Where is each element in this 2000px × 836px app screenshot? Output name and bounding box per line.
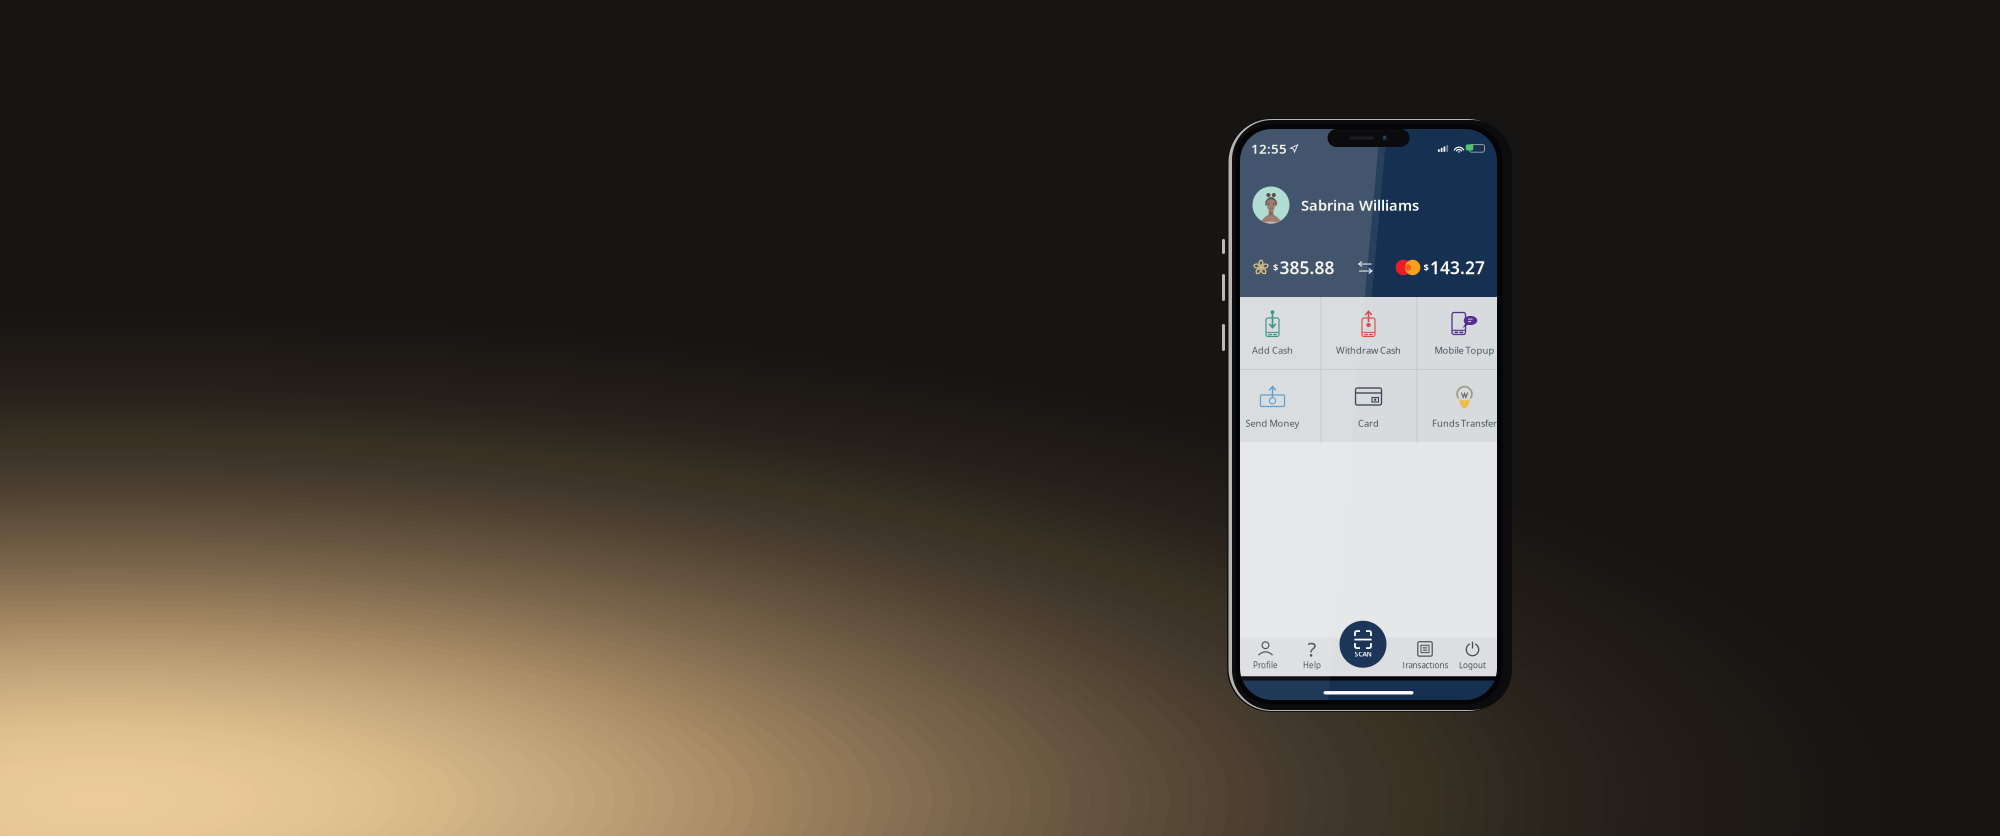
staticText: $ <box>1423 261 1428 274</box>
staticText: Help <box>1303 660 1321 670</box>
staticText: 143.27 <box>1430 256 1485 279</box>
button[interactable]: Funds Transfer <box>1416 370 1512 442</box>
button[interactable]: Withdraw Cash <box>1320 297 1416 369</box>
staticText: Send Money <box>1245 417 1299 429</box>
staticText: Withdraw Cash <box>1336 344 1401 356</box>
staticText: Sabrina Williams <box>1301 195 1419 215</box>
staticText: Add Cash <box>1252 344 1293 356</box>
staticText: 12:55 <box>1251 140 1287 157</box>
staticText: $ <box>1273 261 1278 274</box>
button[interactable]: ? <box>1287 638 1337 676</box>
staticText: SCAN <box>1354 650 1371 658</box>
staticText: Profile <box>1253 660 1278 670</box>
button[interactable]: Profile photo <box>1252 186 1290 224</box>
staticText: Funds Transfer <box>1432 417 1497 429</box>
staticText: Transactions <box>1401 660 1448 670</box>
button[interactable]: Send Money <box>1224 370 1320 442</box>
staticText: Card <box>1358 417 1379 429</box>
button[interactable]: Scan <box>1339 621 1386 668</box>
staticText: 385.88 <box>1279 256 1334 279</box>
button[interactable]: Transactions <box>1394 638 1456 676</box>
button[interactable]: Card <box>1320 370 1416 442</box>
button[interactable]: Profile <box>1240 638 1290 676</box>
staticText: ? <box>1307 636 1316 662</box>
button[interactable]: Mobile Topup <box>1416 297 1512 369</box>
staticText: Mobile Topup <box>1434 344 1494 356</box>
staticText: Logout <box>1459 660 1486 670</box>
button[interactable]: Logout <box>1447 638 1497 676</box>
button[interactable]: Add Cash <box>1224 297 1320 369</box>
